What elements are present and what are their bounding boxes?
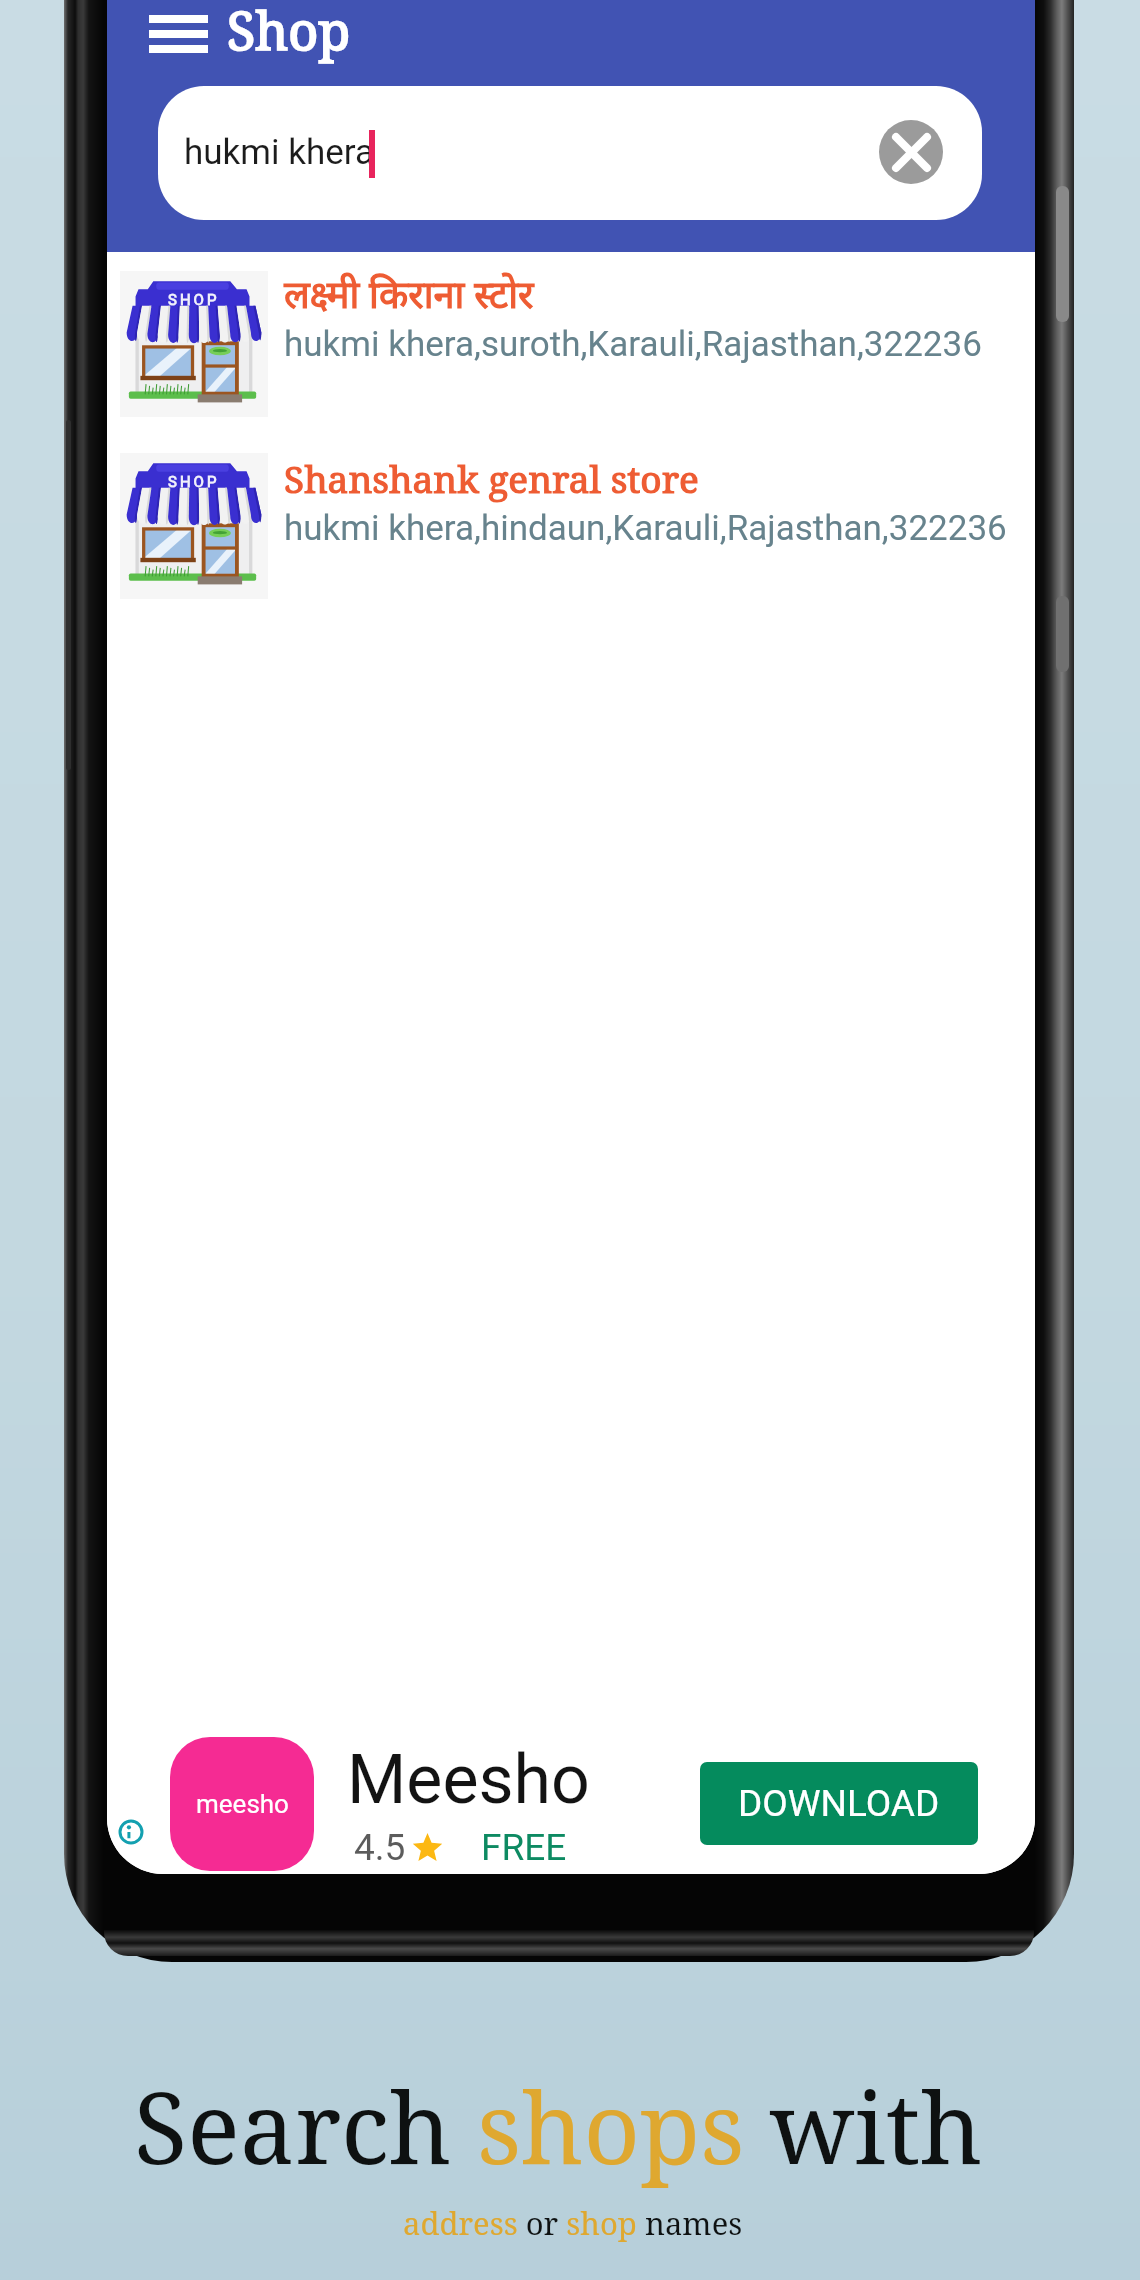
staticText: hukmi khera,suroth,Karauli,Rajasthan,322… [284, 324, 982, 365]
staticText: hukmi khera [184, 132, 374, 173]
button[interactable]: Clear search text [879, 120, 943, 184]
staticText: लक्ष्मी किराना स्टोर [284, 274, 534, 324]
staticText: Shanshank genral store [284, 453, 699, 503]
button[interactable]: meesho [170, 1737, 314, 1871]
staticText: 4.5 [354, 1826, 406, 1869]
staticText: SHOP [168, 291, 220, 309]
staticText: FREE [481, 1826, 567, 1869]
staticText: DOWNLOAD [738, 1782, 940, 1825]
other: Ad information [118, 1819, 144, 1845]
button[interactable]: Search shops [158, 86, 982, 220]
staticText: Search shops with [134, 2059, 983, 2192]
button[interactable]: SHOP [107, 440, 1035, 618]
staticText: hukmi khera,hindaun,Karauli,Rajasthan,32… [284, 508, 1007, 549]
staticText: address or shop names [403, 2202, 743, 2244]
staticText: Meesho [347, 1740, 590, 1820]
button[interactable]: SHOP [107, 258, 1035, 436]
button[interactable]: Open navigation drawer [136, 1, 221, 67]
staticText: Shop [227, 0, 351, 65]
staticText: SHOP [168, 473, 220, 491]
button[interactable]: DOWNLOAD [700, 1762, 978, 1845]
staticText: meesho [196, 1789, 289, 1819]
